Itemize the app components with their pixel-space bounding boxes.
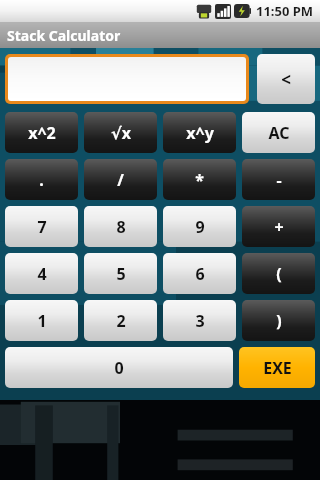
button[interactable]: x^2 (5, 112, 78, 153)
staticText: < (281, 68, 291, 91)
other: Backspace (257, 54, 315, 104)
staticText: AC (268, 122, 290, 144)
staticText: * (195, 169, 204, 191)
staticText: ( (276, 263, 282, 285)
button[interactable]: 1 (5, 300, 78, 341)
staticText: 7 (37, 216, 47, 238)
button[interactable]: AC (242, 112, 315, 153)
button[interactable]: < (257, 54, 315, 104)
staticText: 6 (195, 263, 205, 285)
button[interactable]: 6 (163, 253, 236, 294)
button[interactable]: / (84, 159, 157, 200)
button[interactable]: 0 (5, 347, 233, 388)
button[interactable]: EXE (239, 347, 315, 388)
staticText: 1 (37, 310, 47, 332)
staticText: Stack Calculator (7, 26, 121, 45)
staticText: . (39, 169, 44, 191)
staticText: - (276, 169, 282, 191)
staticText: 11:50 PM (256, 2, 314, 20)
button[interactable]: 7 (5, 206, 78, 247)
button[interactable]: 2 (84, 300, 157, 341)
staticText: 8 (116, 216, 126, 238)
staticText: 0 (114, 357, 124, 379)
button[interactable]: ( (242, 253, 315, 294)
staticText: ) (276, 310, 282, 332)
staticText: 4 (37, 263, 47, 285)
staticText: x^y (186, 122, 214, 144)
staticText: 9 (195, 216, 205, 238)
button[interactable]: . (5, 159, 78, 200)
button[interactable]: 4 (5, 253, 78, 294)
staticText: 3 (195, 310, 205, 332)
staticText: √x (111, 122, 131, 144)
button[interactable]: x^y (163, 112, 236, 153)
button[interactable]: 5 (84, 253, 157, 294)
staticText: 2 (116, 310, 126, 332)
button[interactable]: - (242, 159, 315, 200)
button[interactable]: + (242, 206, 315, 247)
button[interactable]: √x (84, 112, 157, 153)
button[interactable]: 8 (84, 206, 157, 247)
button[interactable]: 9 (163, 206, 236, 247)
button[interactable] (8, 57, 246, 101)
button[interactable]: ) (242, 300, 315, 341)
button[interactable]: 3 (163, 300, 236, 341)
staticText: EXE (263, 357, 292, 379)
staticText: x^2 (28, 122, 56, 144)
button[interactable]: * (163, 159, 236, 200)
staticText: + (274, 216, 284, 238)
staticText: / (117, 169, 124, 191)
staticText: 5 (116, 263, 126, 285)
